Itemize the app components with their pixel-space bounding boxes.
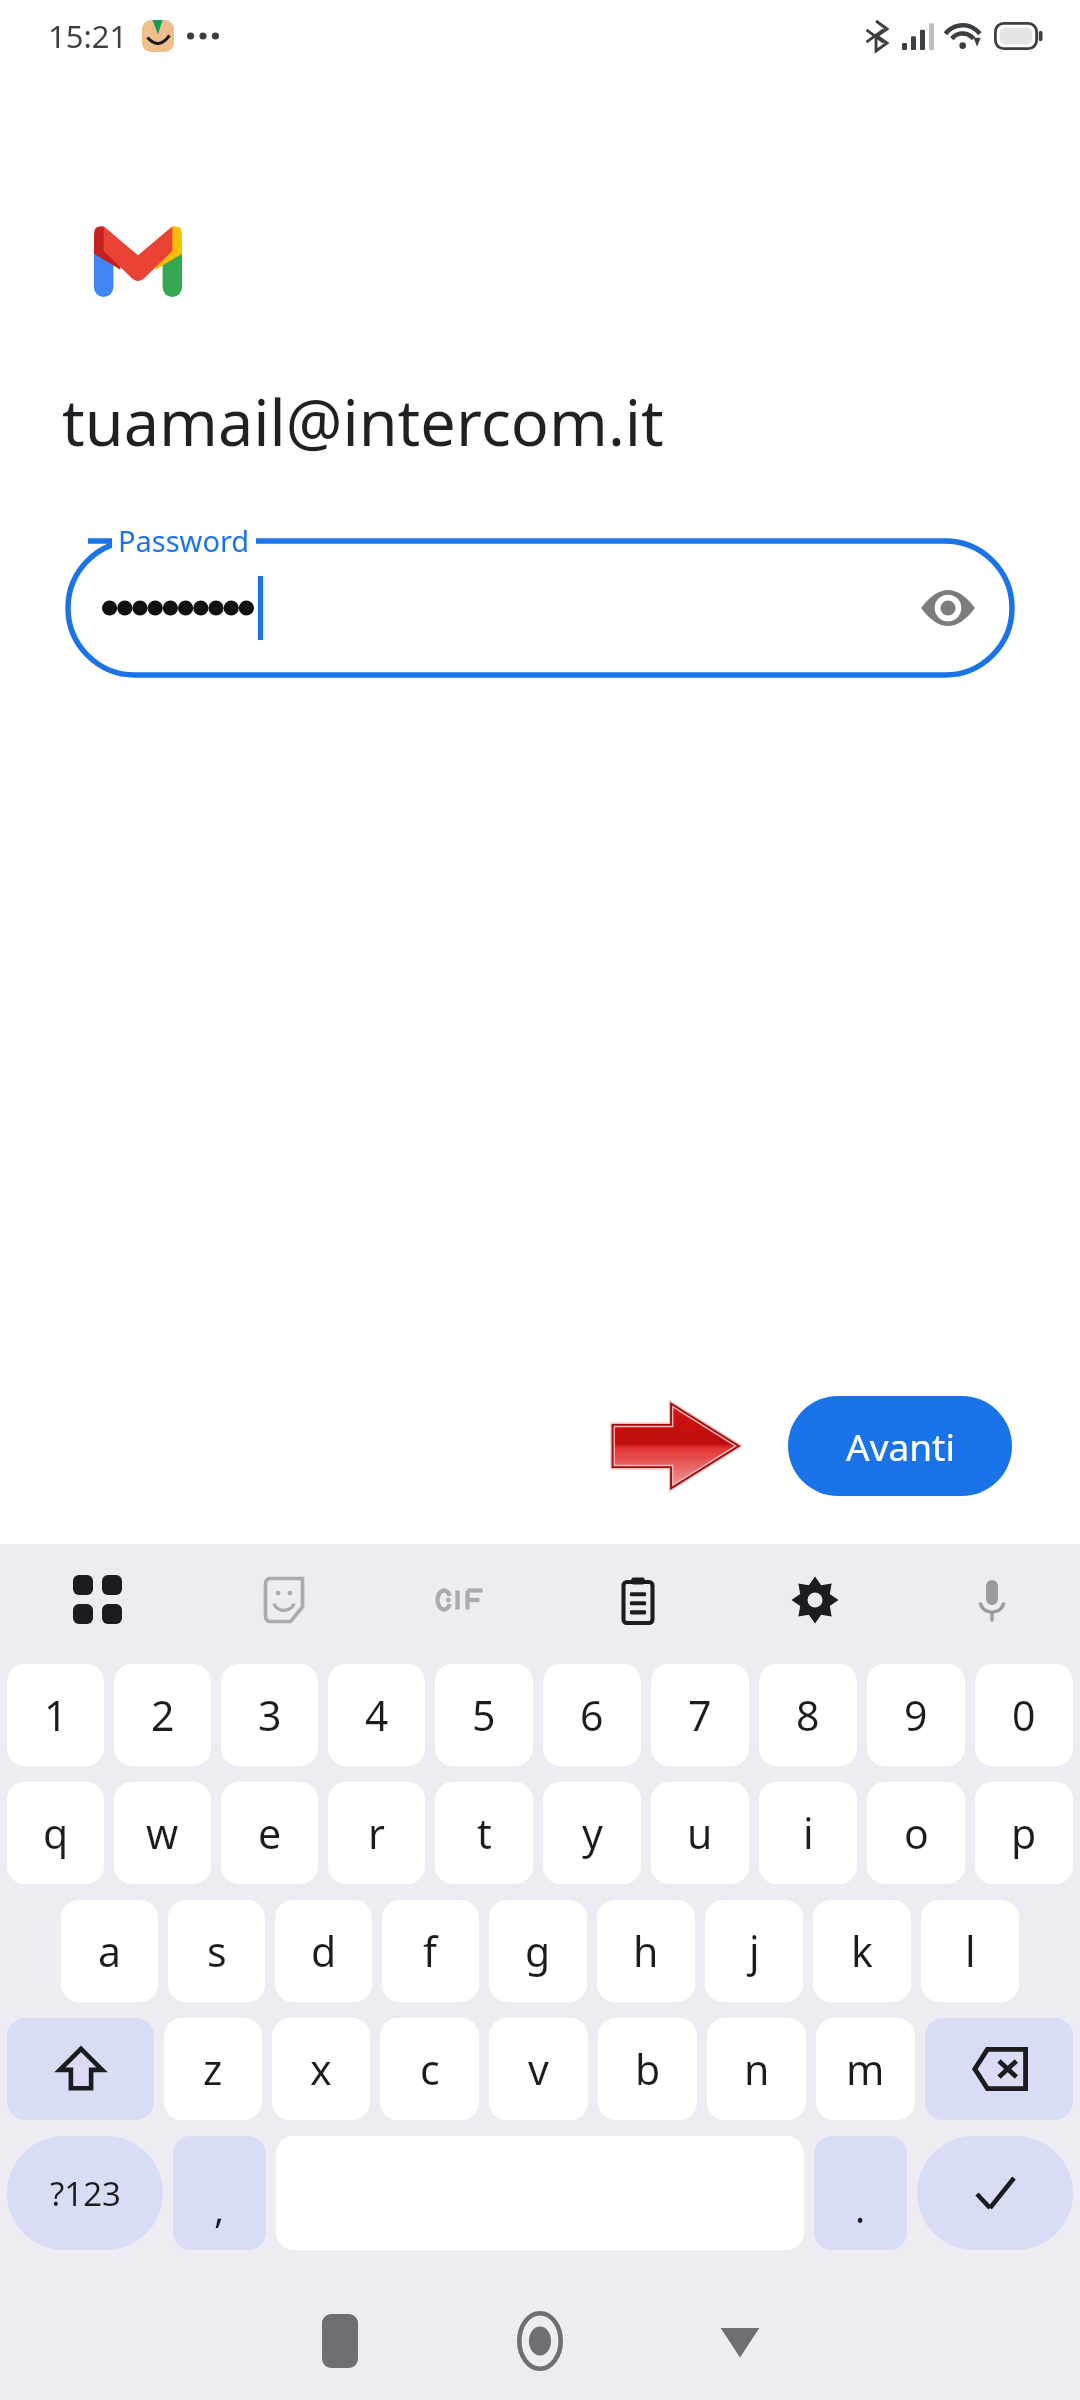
button[interactable]: i bbox=[759, 1782, 857, 1884]
button[interactable]: o bbox=[867, 1782, 965, 1884]
button[interactable]: Voice input bbox=[903, 1544, 1080, 1656]
button[interactable]: , bbox=[173, 2136, 266, 2250]
staticText: 8 bbox=[796, 1687, 820, 1743]
staticText: l bbox=[965, 1923, 976, 1979]
button[interactable]: s bbox=[168, 1900, 265, 2002]
staticText: z bbox=[203, 2041, 223, 2097]
staticText: 2 bbox=[151, 1687, 175, 1743]
button[interactable]: r bbox=[328, 1782, 425, 1884]
button[interactable]: v bbox=[489, 2018, 588, 2120]
staticText: p bbox=[1011, 1805, 1037, 1861]
staticText: 3 bbox=[258, 1687, 282, 1743]
button[interactable]: j bbox=[705, 1900, 803, 2002]
button[interactable]: g bbox=[489, 1900, 587, 2002]
staticText: tuamail@intercom.it bbox=[62, 379, 664, 465]
button[interactable]: . bbox=[814, 2136, 907, 2250]
staticText: c bbox=[420, 2041, 440, 2097]
staticText: e bbox=[258, 1805, 282, 1861]
button[interactable]: Hide keyboard bbox=[640, 2282, 840, 2400]
button[interactable]: e bbox=[221, 1782, 318, 1884]
staticText: i bbox=[803, 1805, 814, 1861]
staticText: o bbox=[904, 1805, 929, 1861]
button[interactable]: Clipboard bbox=[549, 1544, 726, 1656]
button[interactable]: 9 bbox=[867, 1664, 965, 1766]
button[interactable]: p bbox=[975, 1782, 1073, 1884]
button[interactable]: 4 bbox=[328, 1664, 425, 1766]
staticText: h bbox=[633, 1923, 659, 1979]
button[interactable]: Recent apps bbox=[240, 2282, 440, 2400]
staticText: j bbox=[749, 1923, 760, 1979]
staticText: 4 bbox=[365, 1687, 389, 1743]
button[interactable]: Avanti bbox=[788, 1396, 1012, 1496]
staticText: 9 bbox=[904, 1687, 928, 1743]
button[interactable]: c bbox=[380, 2018, 479, 2120]
staticText: b bbox=[635, 2041, 661, 2097]
staticText: 6 bbox=[580, 1687, 604, 1743]
button[interactable]: Enter bbox=[917, 2136, 1073, 2250]
staticText: . bbox=[855, 2182, 866, 2234]
button[interactable]: GIF bbox=[372, 1544, 549, 1656]
staticText: w bbox=[146, 1805, 179, 1861]
button[interactable]: Shift bbox=[7, 2018, 154, 2120]
button[interactable]: h bbox=[597, 1900, 695, 2002]
staticText: g bbox=[525, 1923, 551, 1979]
staticText: q bbox=[43, 1805, 69, 1861]
button[interactable]: 1 bbox=[7, 1664, 104, 1766]
staticText: n bbox=[744, 2041, 770, 2097]
button[interactable]: f bbox=[382, 1900, 479, 2002]
button[interactable]: Keyboard modes bbox=[0, 1544, 195, 1656]
staticText: , bbox=[214, 2182, 225, 2234]
button[interactable]: z bbox=[164, 2018, 262, 2120]
button[interactable]: t bbox=[435, 1782, 533, 1884]
button[interactable]: 2 bbox=[114, 1664, 211, 1766]
staticText: 15:21 bbox=[48, 15, 128, 57]
staticText: d bbox=[311, 1923, 337, 1979]
staticText: s bbox=[207, 1923, 227, 1979]
button[interactable]: 3 bbox=[221, 1664, 318, 1766]
button[interactable]: Home bbox=[440, 2282, 640, 2400]
button[interactable]: w bbox=[114, 1782, 211, 1884]
button[interactable]: k bbox=[813, 1900, 911, 2002]
staticText: 5 bbox=[472, 1687, 496, 1743]
button[interactable]: x bbox=[272, 2018, 370, 2120]
button[interactable]: q bbox=[7, 1782, 104, 1884]
button[interactable]: Password bbox=[68, 525, 1012, 675]
staticText: u bbox=[687, 1805, 713, 1861]
staticText: 7 bbox=[688, 1687, 712, 1743]
button[interactable]: m bbox=[816, 2018, 915, 2120]
staticText: v bbox=[528, 2041, 549, 2097]
button[interactable]: 7 bbox=[651, 1664, 749, 1766]
button[interactable]: y bbox=[543, 1782, 641, 1884]
staticText: a bbox=[98, 1923, 122, 1979]
button[interactable]: Stickers bbox=[195, 1544, 372, 1656]
button[interactable]: ?123 bbox=[7, 2136, 163, 2250]
staticText: ?123 bbox=[50, 2171, 121, 2216]
staticText: x bbox=[310, 2041, 332, 2097]
button[interactable]: b bbox=[598, 2018, 697, 2120]
staticText: t bbox=[477, 1805, 492, 1861]
button[interactable]: n bbox=[707, 2018, 806, 2120]
staticText: y bbox=[582, 1805, 603, 1861]
staticText: Password bbox=[118, 521, 250, 560]
staticText: 1 bbox=[44, 1687, 68, 1743]
staticText: Avanti bbox=[846, 1421, 955, 1471]
button[interactable]: 6 bbox=[543, 1664, 641, 1766]
button[interactable]: l bbox=[921, 1900, 1019, 2002]
button[interactable]: d bbox=[275, 1900, 372, 2002]
button[interactable]: a bbox=[61, 1900, 158, 2002]
button[interactable]: u bbox=[651, 1782, 749, 1884]
staticText: r bbox=[368, 1805, 385, 1861]
button[interactable]: Show password bbox=[914, 574, 982, 642]
button[interactable]: Backspace bbox=[925, 2018, 1073, 2120]
button[interactable]: 5 bbox=[435, 1664, 533, 1766]
staticText: 0 bbox=[1012, 1687, 1036, 1743]
staticText: f bbox=[423, 1923, 438, 1979]
button[interactable]: 8 bbox=[759, 1664, 857, 1766]
button[interactable]: Settings bbox=[726, 1544, 903, 1656]
staticText: k bbox=[851, 1923, 873, 1979]
staticText: m bbox=[846, 2041, 885, 2097]
button[interactable]: 0 bbox=[975, 1664, 1073, 1766]
